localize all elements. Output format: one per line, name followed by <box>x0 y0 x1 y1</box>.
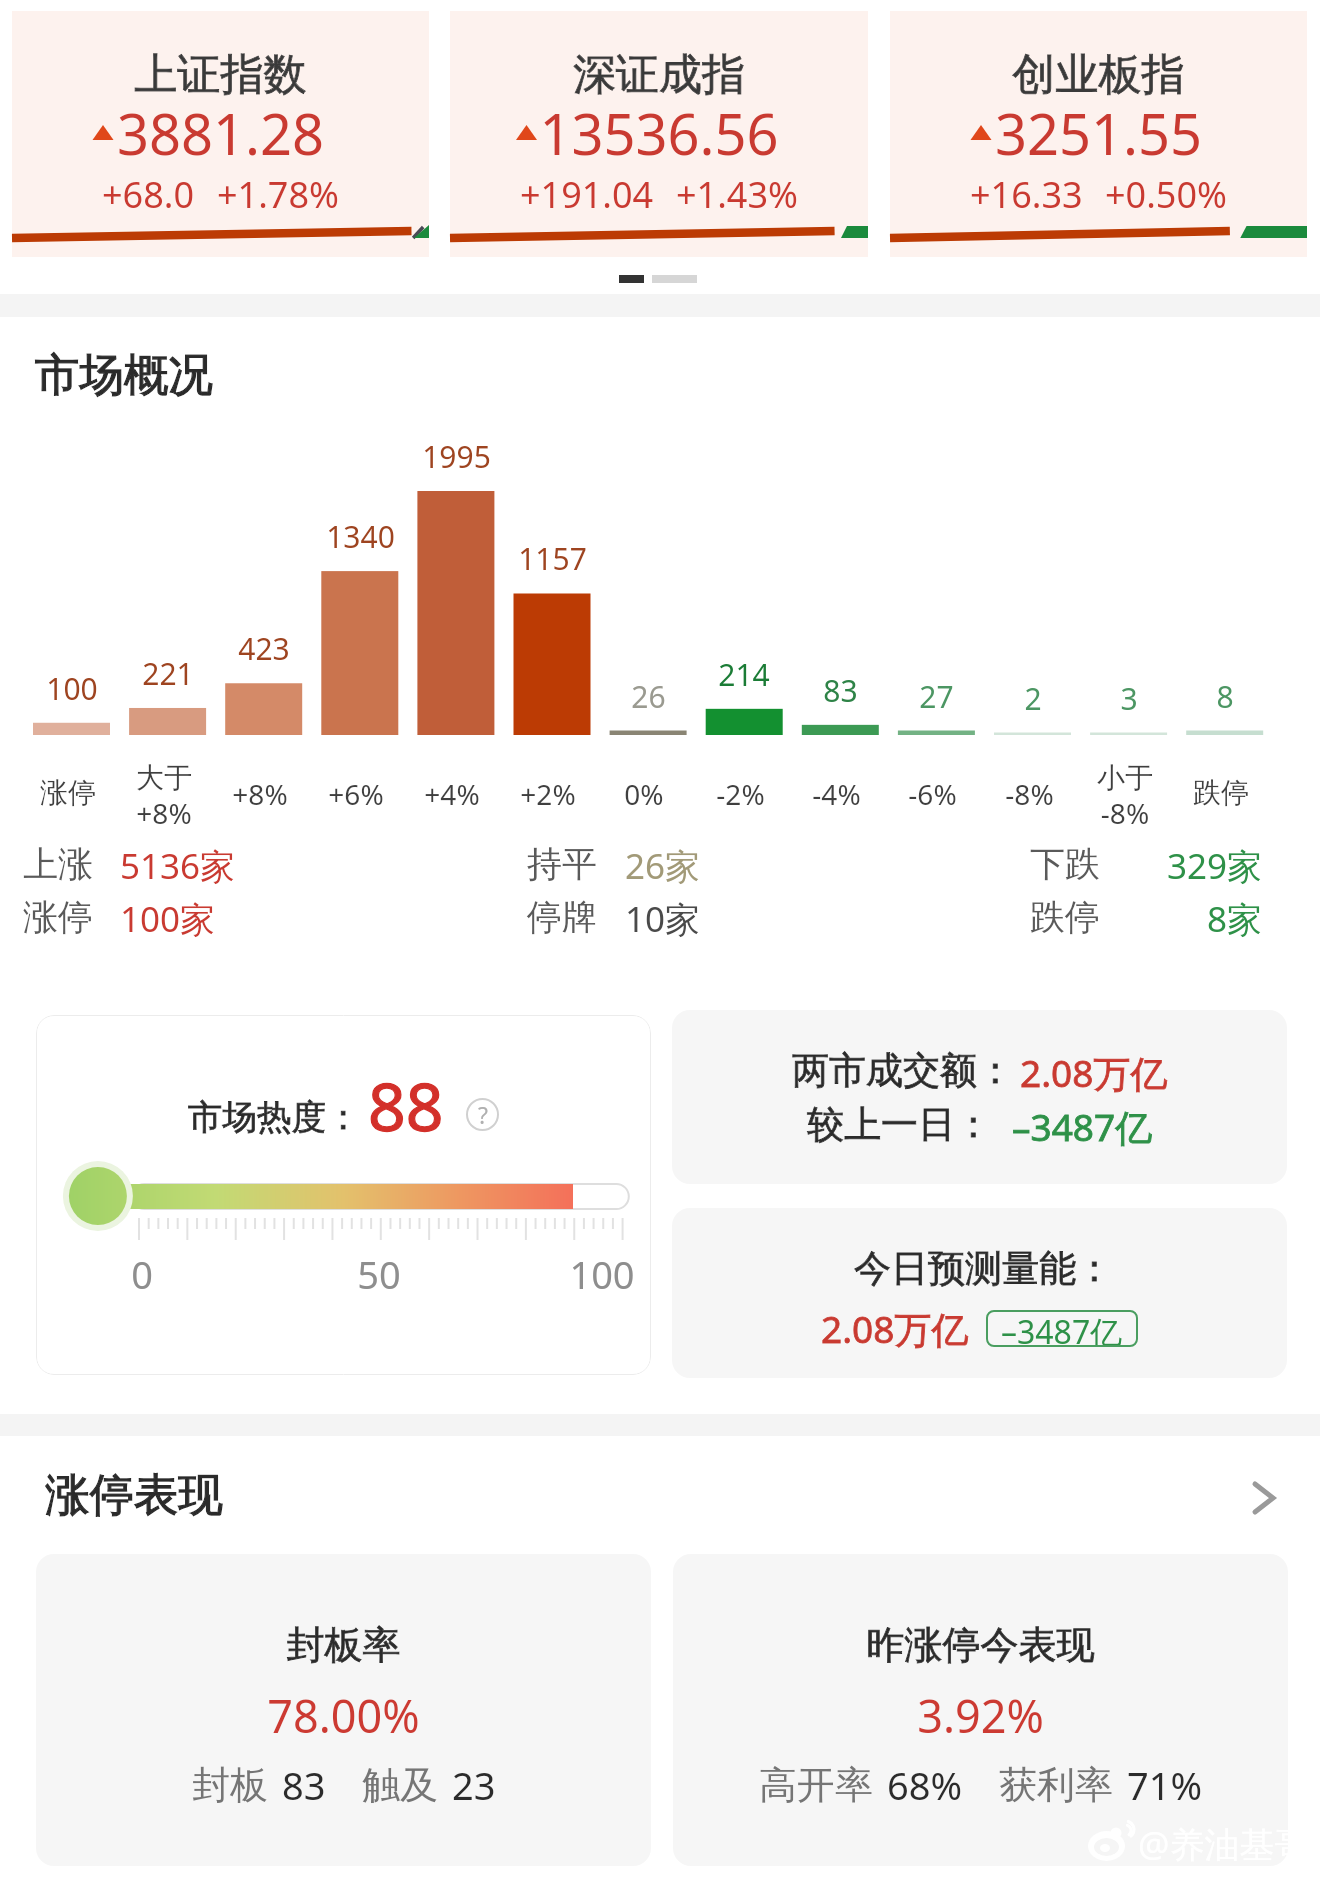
staticText: 下跌 <box>1030 842 1100 886</box>
staticText: 13536.56 <box>450 95 868 171</box>
staticText: 创业板指 <box>890 48 1307 102</box>
staticText: 涨停表现 <box>45 1467 223 1523</box>
staticText: 上涨 <box>23 842 93 886</box>
staticText: 两市成交额： <box>792 1047 1014 1094</box>
staticText: -4% <box>812 775 861 813</box>
staticText: –3487亿 <box>1012 1101 1153 1152</box>
staticText: 深证成指 <box>450 48 868 102</box>
button[interactable]: 封板率 <box>36 1554 651 1866</box>
staticText: +1.78% <box>217 170 339 219</box>
staticText: 5136家 <box>120 842 236 890</box>
staticText: +6% <box>328 775 384 813</box>
staticText: +0.50% <box>1105 170 1227 219</box>
staticText: 停牌 <box>527 895 597 939</box>
staticText: 0 <box>131 1248 153 1300</box>
staticText: 2.08万亿 <box>1020 1047 1168 1098</box>
staticText: 1995 <box>422 436 491 477</box>
staticText: 3 <box>1120 678 1138 719</box>
staticText: 涨停表现 <box>45 1467 223 1523</box>
staticText: 涨停 <box>23 895 93 939</box>
staticText: 深证成指 <box>450 48 868 102</box>
staticText: -6% <box>908 775 957 813</box>
button[interactable]: 涨停表现 <box>45 1462 1276 1526</box>
staticText: +1.43% <box>676 170 798 219</box>
staticText: 50 <box>357 1248 401 1300</box>
staticText: 83 <box>282 1759 326 1811</box>
staticText: 26家 <box>625 842 701 890</box>
staticText: 较上一日： <box>807 1101 992 1148</box>
button[interactable]: 昨涨停今表现 <box>673 1554 1288 1866</box>
staticText: 423 <box>238 628 290 669</box>
staticText: 昨涨停今表现 <box>673 1621 1288 1669</box>
staticText: +68.0 <box>102 170 195 219</box>
staticText: 88 <box>368 1060 444 1150</box>
staticText: 68% <box>887 1759 963 1811</box>
staticText: 2 <box>1024 678 1042 719</box>
staticText: –3487亿 <box>1012 1101 1153 1152</box>
staticText: 获利率 <box>999 1761 1113 1809</box>
staticText: +16.33 <box>970 170 1083 219</box>
staticText: 上证指数 <box>12 48 429 102</box>
staticText: 83 <box>823 670 858 711</box>
button[interactable]: 市场热度： <box>36 1015 651 1375</box>
staticText: 市场热度： <box>188 1096 361 1139</box>
staticText: 2.08万亿 <box>1020 1047 1168 1098</box>
staticText: 触及 <box>362 1761 438 1809</box>
staticText: +2% <box>520 775 576 813</box>
staticText: 今日预测量能： <box>854 1245 1113 1292</box>
staticText: 跌停 <box>1193 775 1249 810</box>
staticText: 封板 <box>192 1761 268 1809</box>
button[interactable]: 创业板指 <box>890 11 1307 257</box>
staticText: 27 <box>919 676 954 717</box>
staticText: 跌停 <box>1030 895 1100 939</box>
staticText: ? <box>478 1099 488 1130</box>
staticText: 71% <box>1127 1759 1203 1811</box>
staticText: 小于 -8% <box>1097 760 1153 832</box>
staticText: 3881.28 <box>12 95 429 171</box>
staticText: 创业板指 <box>890 48 1307 102</box>
button[interactable]: 今日预测量能： <box>672 1208 1287 1378</box>
staticText: 持平 <box>527 842 597 886</box>
staticText: +8% <box>232 775 288 813</box>
staticText: 2.08万亿 <box>821 1303 969 1354</box>
staticText: 封板率 <box>36 1621 651 1669</box>
staticText: 26 <box>631 676 666 717</box>
staticText: +191.04 <box>520 170 654 219</box>
staticText: 78.00% <box>267 1685 420 1746</box>
staticText: 上证指数 <box>12 48 429 102</box>
staticText: 昨涨停今表现 <box>673 1621 1288 1669</box>
staticText: @养油基哥 <box>1138 1820 1310 1868</box>
staticText: 3251.55 <box>890 95 1307 171</box>
staticText: 市场概况 <box>35 347 213 403</box>
staticText: 8家 <box>1206 895 1262 943</box>
staticText: –3487亿 <box>1001 1310 1123 1347</box>
staticText: 100家 <box>120 895 216 943</box>
button[interactable]: 两市成交额： <box>672 1010 1287 1184</box>
staticText: 100 <box>569 1248 635 1300</box>
staticText: 大于 +8% <box>136 760 192 832</box>
staticText: 88 <box>368 1060 444 1150</box>
staticText: +4% <box>424 775 480 813</box>
button[interactable]: 深证成指 <box>450 11 868 257</box>
staticText: 封板率 <box>36 1621 651 1669</box>
staticText: 214 <box>718 654 770 695</box>
staticText: 两市成交额： <box>792 1047 1014 1094</box>
staticText: 市场概况 <box>35 347 213 403</box>
staticText: 较上一日： <box>807 1101 992 1148</box>
staticText: 0% <box>624 775 664 813</box>
other: More <box>1252 1481 1276 1515</box>
staticText: 10家 <box>625 895 701 943</box>
staticText: -8% <box>1005 775 1054 813</box>
staticText: 3.92% <box>917 1685 1044 1746</box>
staticText: 8 <box>1216 676 1234 717</box>
staticText: 1157 <box>518 538 587 579</box>
staticText: 2.08万亿 <box>821 1303 969 1354</box>
staticText: 100 <box>46 668 98 709</box>
staticText: 市场热度： <box>188 1096 361 1139</box>
button[interactable]: 上证指数 <box>12 11 429 257</box>
staticText: 221 <box>142 653 194 694</box>
staticText: -2% <box>716 775 765 813</box>
staticText: 23 <box>452 1759 496 1811</box>
staticText: 329家 <box>1166 842 1262 890</box>
staticText: 涨停 <box>40 775 96 810</box>
